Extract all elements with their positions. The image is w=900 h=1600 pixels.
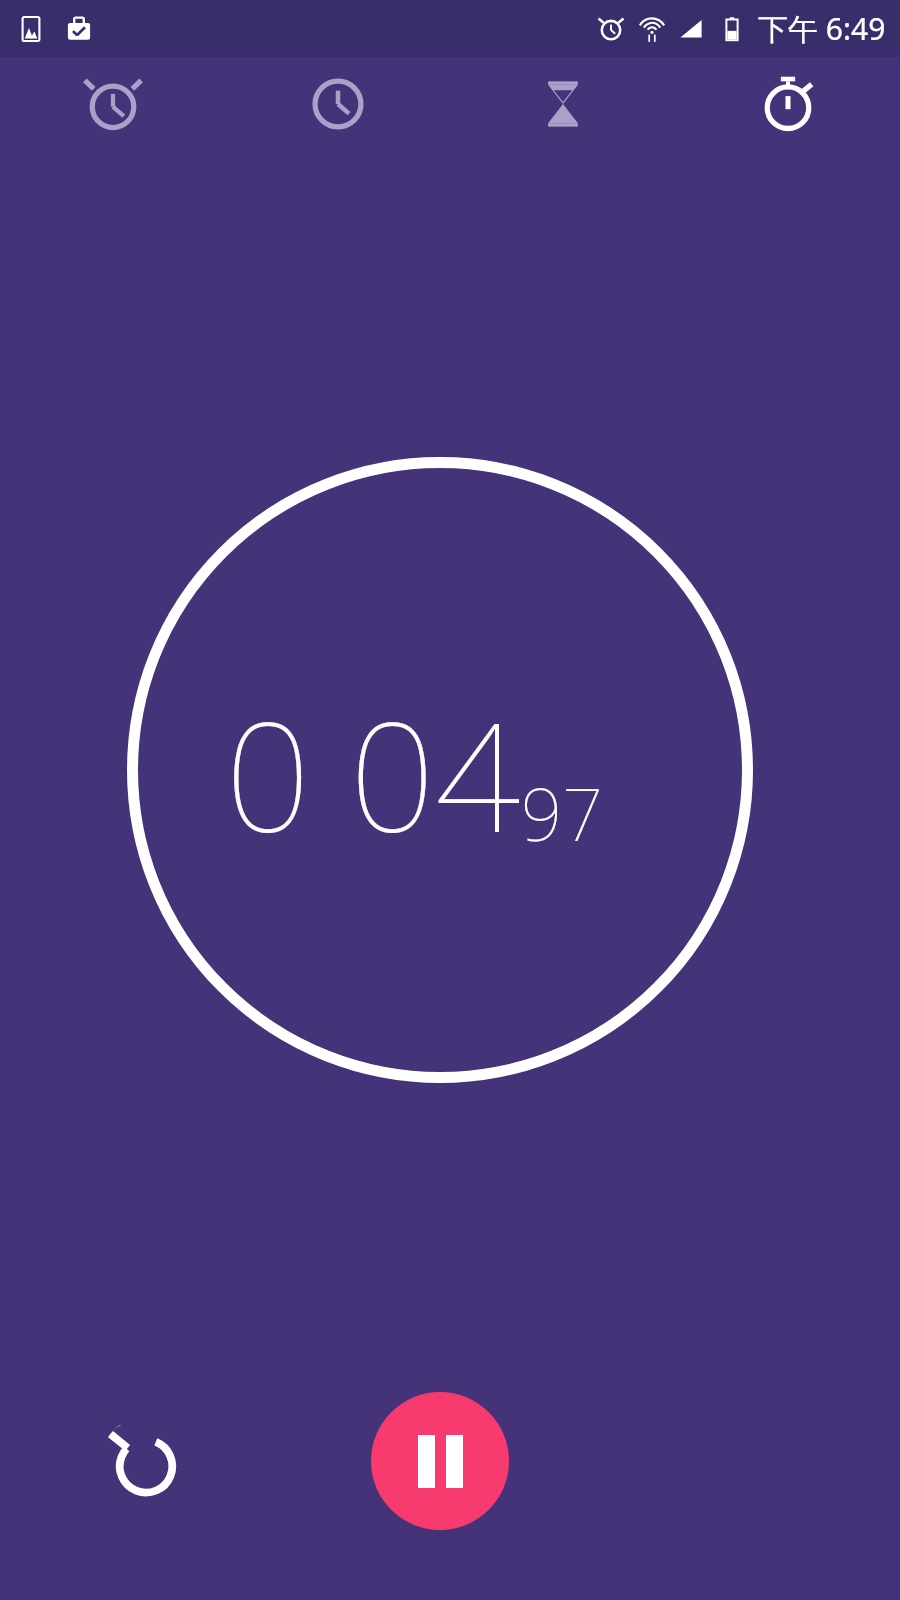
button[interactable]: Alarm	[0, 57, 225, 150]
staticText: 97	[521, 764, 604, 862]
button[interactable]: World clock	[225, 57, 450, 150]
button[interactable]: Pause	[371, 1392, 509, 1530]
staticText: 下午 6:49	[758, 8, 886, 49]
staticText: 0 04	[225, 672, 521, 876]
button[interactable]: Stopwatch	[675, 57, 900, 150]
button[interactable]: Timer	[450, 57, 675, 150]
button[interactable]: Reset	[100, 1417, 192, 1509]
